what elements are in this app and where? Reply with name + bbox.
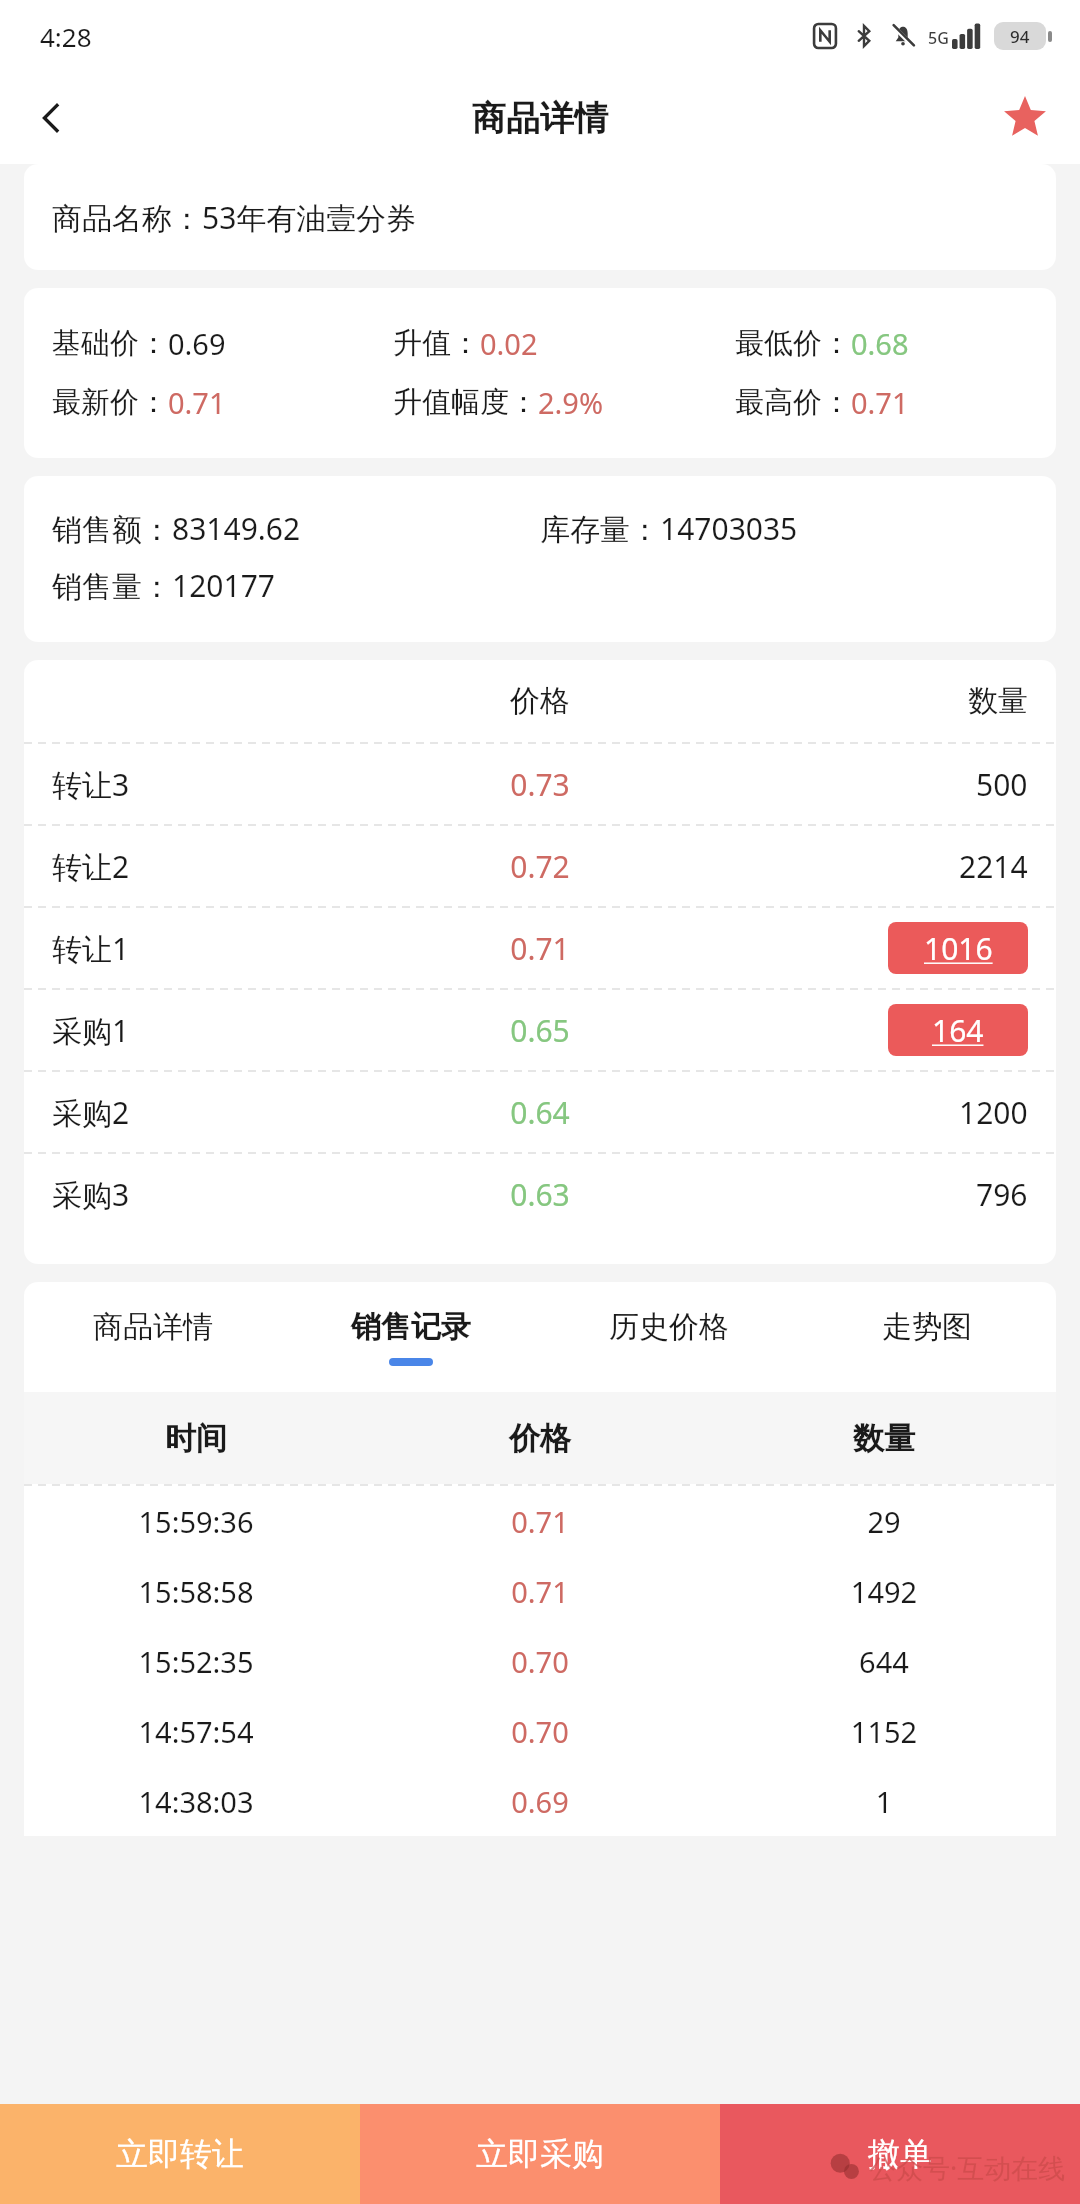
button[interactable]: 采购2 [24,1072,1056,1152]
staticText: 4:28 [40,19,92,54]
staticText: 0.68 [851,324,909,363]
staticText: 2.9% [538,383,604,422]
button[interactable]: 采购3 [24,1154,1056,1234]
button[interactable]: 转让3 [24,744,1056,824]
button[interactable]: Favorite [992,85,1058,151]
staticText: 采购2 [52,1092,368,1133]
staticText: 0.72 [368,846,712,887]
button[interactable]: 撤单 [720,2104,1080,2204]
staticText: 0.71 [368,1572,712,1611]
staticText: 15:59:36 [24,1502,368,1541]
staticText: 最低价： [735,325,851,362]
button[interactable]: 15:52:35 [24,1626,1056,1696]
staticText: 14:57:54 [24,1712,368,1751]
staticText: 升值幅度： [393,384,538,421]
staticText: 销售记录 [351,1308,471,1346]
staticText: 库存量：14703035 [540,508,1028,549]
staticText: 0.69 [168,324,226,363]
staticText: 500 [976,764,1028,805]
staticText: 采购1 [52,1010,368,1051]
staticText: 最高价： [735,384,851,421]
staticText: 1 [712,1782,1056,1821]
staticText: 14:38:03 [24,1782,368,1821]
staticText: 走势图 [882,1308,972,1346]
staticText: 0.71 [368,928,712,969]
button[interactable]: Back [18,85,84,151]
button[interactable]: 采购1 [24,990,1056,1070]
staticText: 644 [712,1642,1056,1681]
staticText: 2214 [959,846,1028,887]
staticText: 0.65 [368,1010,712,1051]
staticText: 1152 [712,1712,1056,1751]
staticText: 0.71 [368,1502,712,1541]
staticText: 0.70 [368,1642,712,1681]
staticText: 价格 [368,1419,712,1458]
staticText: 时间 [24,1419,368,1458]
staticText: 采购3 [52,1174,368,1215]
staticText: 转让2 [52,846,368,887]
staticText: 立即转让 [116,2134,244,2174]
staticText: 1016 [924,928,993,969]
staticText: 5G [928,27,949,49]
staticText: 立即采购 [476,2134,604,2174]
staticText: 商品详情 [472,97,608,140]
button[interactable]: 15:59:36 [24,1486,1056,1556]
staticText: 转让3 [52,764,368,805]
staticText: 15:52:35 [24,1642,368,1681]
staticText: 15:58:58 [24,1572,368,1611]
button[interactable]: 走势图 [798,1282,1056,1392]
button[interactable]: 历史价格 [540,1282,798,1392]
button[interactable]: 立即转让 [0,2104,360,2204]
staticText: 0.70 [368,1712,712,1751]
staticText: 94 [1010,25,1030,48]
staticText: 历史价格 [609,1308,729,1346]
staticText: 1492 [712,1572,1056,1611]
button[interactable]: 14:57:54 [24,1696,1056,1766]
staticText: 0.64 [368,1092,712,1133]
staticText: 29 [712,1502,1056,1541]
staticText: 796 [976,1174,1028,1215]
staticText: 0.71 [851,383,909,422]
staticText: 价格 [368,682,712,720]
staticText: 0.63 [368,1174,712,1215]
button[interactable]: 14:38:03 [24,1766,1056,1836]
button[interactable]: 商品详情 [24,1282,282,1392]
staticText: 1200 [959,1092,1028,1133]
staticText: 基础价： [52,325,168,362]
staticText: 最新价： [52,384,168,421]
staticText: 164 [932,1010,984,1051]
button[interactable]: 立即采购 [360,2104,720,2204]
staticText: 公众号·互动在线 [869,2149,1066,2186]
button[interactable]: 15:58:58 [24,1556,1056,1626]
staticText: 0.02 [480,324,538,363]
staticText: 商品详情 [93,1308,213,1346]
button[interactable]: 转让1 [24,908,1056,988]
staticText: 撤单 [868,2134,932,2174]
staticText: 销售额：83149.62 [52,508,540,549]
staticText: 数量 [712,1419,1056,1458]
staticText: 转让1 [52,928,368,969]
staticText: 0.73 [368,764,712,805]
staticText: 销售量：120177 [52,565,540,606]
staticText: 商品名称：53年有油壹分券 [52,197,417,238]
staticText: 0.71 [168,383,226,422]
staticText: 0.69 [368,1782,712,1821]
button[interactable]: 转让2 [24,826,1056,906]
button[interactable]: 销售记录 [282,1282,540,1392]
staticText: 升值： [393,325,480,362]
staticText: 数量 [968,682,1028,720]
